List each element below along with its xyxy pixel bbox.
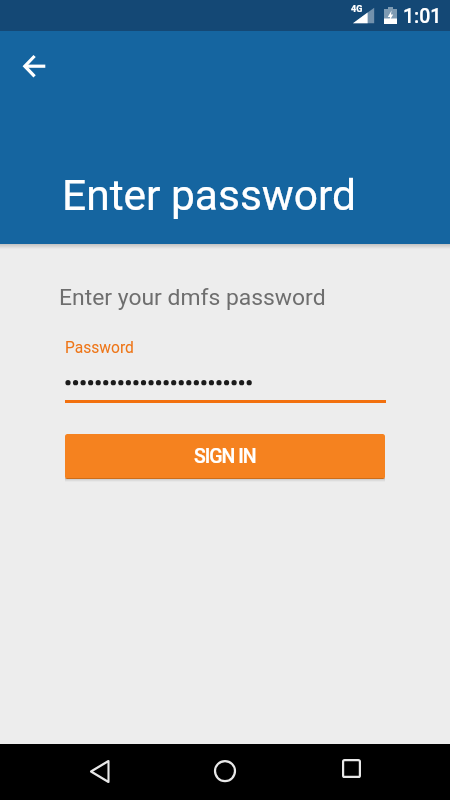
staticText: 1:01: [403, 5, 442, 28]
button[interactable]: [11, 42, 59, 90]
button[interactable]: SIGN IN: [65, 434, 385, 479]
staticText: Password: [65, 339, 134, 357]
button[interactable]: [76, 746, 124, 798]
staticText: Enter your dmfs password: [59, 284, 326, 311]
staticText: SIGN IN: [194, 445, 256, 468]
staticText: 4G: [351, 4, 363, 15]
button[interactable]: [327, 746, 375, 798]
staticText: Enter password: [62, 171, 357, 221]
button[interactable]: [201, 746, 249, 798]
